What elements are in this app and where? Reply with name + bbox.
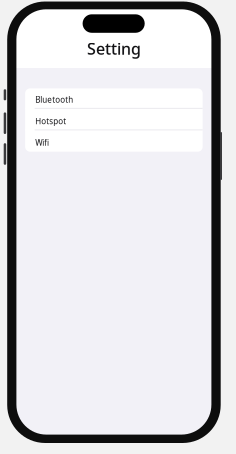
- staticText: Wifi: [35, 137, 49, 148]
- button[interactable]: Hotspot: [25, 109, 203, 129]
- staticText: Setting: [87, 38, 141, 59]
- staticText: Bluetooth: [35, 94, 73, 105]
- button[interactable]: Wifi: [25, 130, 203, 152]
- staticText: Hotspot: [35, 116, 66, 126]
- button[interactable]: Bluetooth: [25, 88, 203, 108]
